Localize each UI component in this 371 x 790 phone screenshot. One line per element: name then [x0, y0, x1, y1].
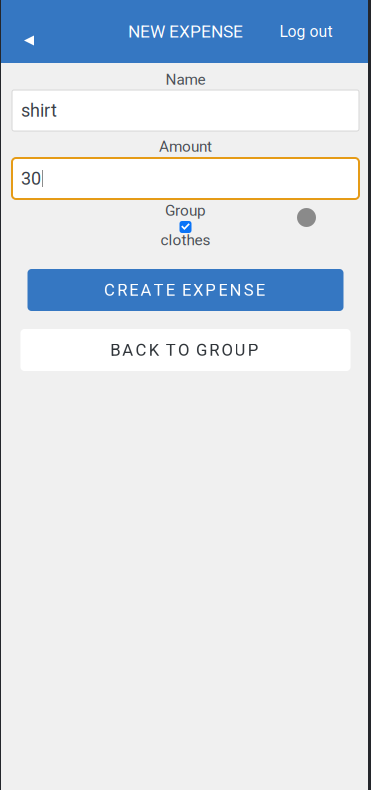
staticText: T	[166, 340, 176, 360]
staticText: Log out	[279, 22, 332, 41]
staticText: B	[110, 340, 120, 360]
staticText: E	[182, 280, 191, 300]
staticText: 30	[21, 168, 41, 189]
staticText: E	[166, 280, 175, 300]
button[interactable]: clothes selected	[179, 221, 191, 233]
button[interactable]: B	[20, 329, 350, 371]
staticText: R	[117, 280, 127, 300]
staticText: A	[140, 280, 151, 300]
staticText: NEW EXPENSE	[128, 21, 243, 42]
button[interactable]: C	[27, 269, 343, 311]
staticText: O	[178, 340, 189, 360]
staticText: Group	[165, 201, 206, 219]
staticText: clothes	[160, 231, 210, 249]
staticText: S	[244, 280, 254, 300]
staticText: shirt	[21, 100, 57, 121]
staticText: U	[234, 340, 245, 360]
staticText: N	[229, 280, 241, 300]
staticText: C	[104, 280, 115, 300]
staticText: T	[154, 280, 164, 300]
staticText: O	[221, 340, 232, 360]
staticText: R	[209, 340, 219, 360]
staticText: C	[135, 340, 146, 360]
staticText: E	[218, 280, 227, 300]
staticText: K	[149, 340, 159, 360]
button[interactable]: Log out	[241, 0, 371, 63]
staticText: E	[129, 280, 138, 300]
button[interactable]: Back	[0, 0, 58, 63]
staticText: X	[193, 280, 203, 300]
staticText: P	[248, 340, 259, 360]
staticText: G	[196, 340, 207, 360]
staticText: E	[256, 280, 265, 300]
staticText: A	[122, 340, 133, 360]
staticText: Name	[165, 70, 205, 88]
staticText: Amount	[159, 137, 212, 155]
staticText: P	[205, 280, 216, 300]
